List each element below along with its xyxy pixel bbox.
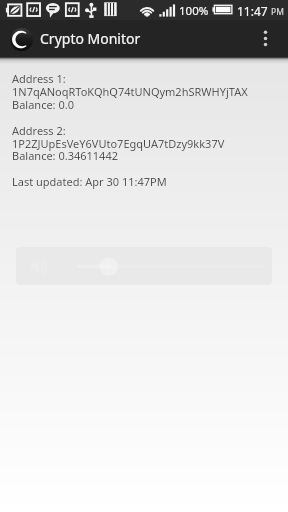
staticText: 11:47 [237,3,268,19]
staticText: PM [271,6,284,18]
staticText: Address 1: [12,71,66,86]
staticText: Address 2: [12,123,66,138]
staticText: Crypto Monitor [40,29,141,48]
staticText: Balance: 0.34611442 [12,148,118,163]
staticText: 1P2ZJUpEsVeY6VUto7EgqUA7tDzy9kk37V [12,136,225,151]
staticText: 1N7qANoqRToKQhQ74tUNQym2hSRWHYjTAX [12,84,248,99]
staticText: 100% [179,3,209,19]
staticText: Balance: 0.0 [12,97,74,112]
staticText: Last updated: Apr 30 11:47PM [12,174,167,189]
button[interactable]: Crypto Monitor app icon [9,27,33,51]
button[interactable]: More options [244,20,288,57]
